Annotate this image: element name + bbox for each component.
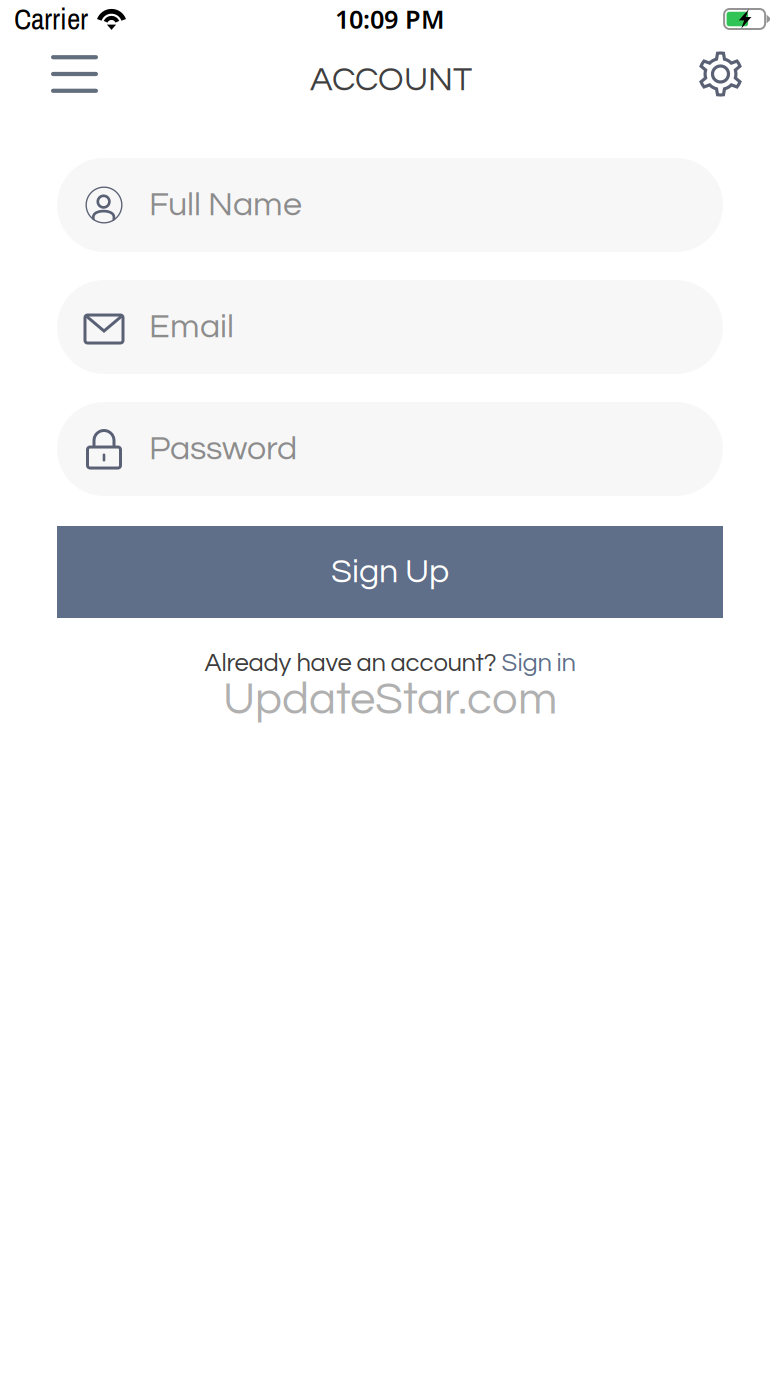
button[interactable]: Menu [37,41,112,107]
button[interactable]: Email [57,280,723,374]
button[interactable]: Sign Up [57,526,723,618]
button[interactable]: Full Name [57,158,723,252]
staticText: Sign Up [331,554,449,589]
staticText: Carrier [14,0,88,39]
staticText: Password [149,431,297,466]
staticText: Sign in [501,650,575,676]
button[interactable]: Sign in [501,650,575,676]
staticText: Email [149,309,234,344]
staticText: Already have an account? [204,650,501,676]
staticText: ACCOUNT [310,62,472,97]
staticText: UpdateStar.com [223,676,557,723]
staticText: 10:09 PM [335,2,445,36]
button[interactable]: Password [57,402,723,496]
staticText: Full Name [149,187,302,222]
button[interactable]: Settings [683,41,758,107]
